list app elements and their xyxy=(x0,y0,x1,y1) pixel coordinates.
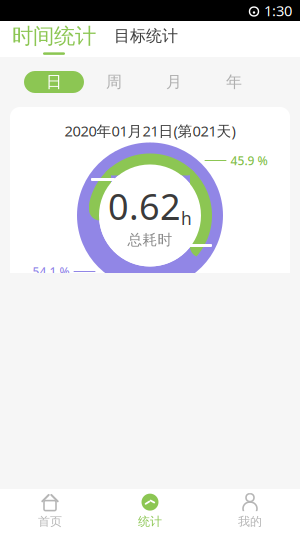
staticText: 0.62 xyxy=(108,182,181,230)
staticText: 月 xyxy=(166,72,182,92)
staticText: 目标统计 xyxy=(114,26,178,46)
staticText: 时间统计 xyxy=(12,23,96,49)
staticText: 2020年01月21日(第021天) xyxy=(64,121,235,140)
button[interactable]: 日 xyxy=(24,71,84,93)
staticText: 周 xyxy=(106,72,122,92)
staticText: 年 xyxy=(226,72,242,92)
staticText: 首页 xyxy=(38,514,62,529)
button[interactable]: 时间统计 xyxy=(12,23,96,55)
staticText: 我的 xyxy=(238,514,262,529)
button[interactable]: 年 xyxy=(204,71,264,93)
staticText: 54.1 % xyxy=(32,263,69,279)
staticText: 总耗时 xyxy=(127,231,172,249)
button[interactable]: 月 xyxy=(144,71,204,93)
button[interactable]: 统计 xyxy=(100,487,200,533)
staticText: h xyxy=(181,207,192,230)
button[interactable]: 我的 xyxy=(200,487,300,533)
staticText: 45.9 % xyxy=(230,152,267,168)
button[interactable]: 首页 xyxy=(0,487,100,533)
staticText: 1:30 xyxy=(264,1,292,20)
staticText: 统计 xyxy=(138,514,162,529)
button[interactable]: 周 xyxy=(84,71,144,93)
button[interactable]: 目标统计 xyxy=(114,23,178,51)
staticText: 日 xyxy=(46,72,62,92)
